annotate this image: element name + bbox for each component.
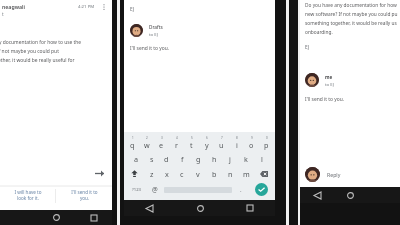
staticText: k: [244, 154, 248, 164]
button[interactable]: f: [174, 151, 190, 166]
button[interactable]: Reply: [300, 161, 400, 187]
button[interactable]: Send: [255, 183, 268, 196]
staticText: g: [196, 154, 201, 164]
staticText: r: [175, 140, 178, 150]
staticText: 2: [146, 136, 148, 140]
staticText: q: [130, 140, 135, 150]
staticText: me: [325, 74, 333, 80]
staticText: I'll send it to you.: [305, 96, 345, 103]
button[interactable]: Home: [38, 210, 75, 225]
staticText: a: [134, 154, 139, 164]
staticText: Drafts: [149, 24, 163, 30]
staticText: h: [212, 154, 217, 164]
staticText: y: [205, 140, 209, 150]
staticText: z: [150, 169, 154, 179]
staticText: something together, it would be really u…: [305, 20, 397, 27]
staticText: t: [2, 11, 4, 17]
staticText: w: [144, 140, 150, 150]
staticText: neagwali: [2, 3, 25, 10]
button[interactable]: d: [159, 151, 174, 166]
button[interactable]: Backspace: [254, 166, 274, 181]
button[interactable]: Recents: [225, 200, 275, 216]
button[interactable]: Back: [124, 200, 175, 216]
staticText: to EJ: [325, 81, 335, 87]
button[interactable]: Recents: [75, 210, 112, 225]
button[interactable]: 8: [229, 134, 244, 151]
staticText: 4: [176, 136, 178, 140]
button[interactable]: 7: [214, 134, 229, 151]
button[interactable]: 2: [139, 134, 154, 151]
staticText: 6: [206, 136, 208, 140]
button[interactable]: Forward: [94, 168, 105, 179]
button[interactable]: I'll send it to you.: [56, 189, 112, 210]
staticText: I'll send it to you.: [71, 189, 98, 201]
staticText: y documentation for how to use the: [0, 39, 82, 46]
staticText: v: [196, 169, 200, 179]
button[interactable]: 3: [154, 134, 169, 151]
button[interactable]: n: [222, 166, 238, 181]
staticText: 1: [132, 136, 134, 140]
button[interactable]: c: [174, 166, 190, 181]
button[interactable]: .: [234, 181, 248, 198]
button[interactable]: 9: [244, 134, 259, 151]
button[interactable]: l: [254, 151, 270, 166]
button[interactable]: z: [144, 166, 159, 181]
staticText: I will have to look for it.: [14, 189, 42, 201]
staticText: m: [243, 169, 250, 179]
button[interactable]: v: [190, 166, 206, 181]
button[interactable]: 0: [259, 134, 274, 151]
staticText: EJ: [305, 44, 310, 51]
staticText: p: [264, 140, 269, 150]
staticText: i: [236, 140, 238, 150]
button[interactable]: s: [144, 151, 159, 166]
button[interactable]: Back: [300, 187, 334, 203]
staticText: x: [165, 169, 169, 179]
button[interactable]: More options: [100, 3, 108, 11]
button[interactable]: a: [129, 151, 144, 166]
staticText: o: [249, 140, 254, 150]
staticText: new software? If not maybe you could pu: [305, 11, 398, 18]
staticText: f: [181, 154, 184, 164]
staticText: d: [164, 154, 169, 164]
button[interactable]: 6: [199, 134, 214, 151]
staticText: If not maybe you could put: [0, 48, 59, 55]
staticText: e: [159, 140, 164, 150]
button[interactable]: 4: [169, 134, 184, 151]
button[interactable]: @: [148, 181, 162, 198]
button[interactable]: ?123: [125, 181, 148, 198]
staticText: 4:21 PM: [78, 3, 95, 9]
staticText: onboarding.: [305, 29, 333, 36]
staticText: 5: [191, 136, 193, 140]
staticText: .: [240, 186, 242, 194]
staticText: 9: [251, 136, 253, 140]
staticText: j: [229, 154, 231, 164]
button[interactable]: Shift: [125, 166, 144, 181]
button[interactable]: 1: [125, 134, 139, 151]
button[interactable]: m: [238, 166, 254, 181]
staticText: n: [228, 169, 233, 179]
staticText: EJ: [130, 6, 135, 13]
button[interactable]: Home: [175, 200, 225, 216]
staticText: s: [150, 154, 154, 164]
button[interactable]: Home: [334, 187, 367, 203]
staticText: u: [219, 140, 224, 150]
button[interactable]: x: [159, 166, 174, 181]
staticText: 3: [161, 136, 163, 140]
button[interactable]: k: [238, 151, 254, 166]
button[interactable]: g: [190, 151, 206, 166]
staticText: 8: [236, 136, 238, 140]
button[interactable]: b: [206, 166, 222, 181]
staticText: b: [212, 169, 217, 179]
staticText: ?123: [132, 187, 142, 193]
staticText: Reply: [327, 171, 341, 178]
button[interactable]: h: [206, 151, 222, 166]
button[interactable]: j: [222, 151, 238, 166]
staticText: 0: [266, 136, 268, 140]
button[interactable]: I will have to look for it.: [0, 189, 55, 210]
staticText: ether, it would be really useful for: [0, 57, 75, 64]
staticText: l: [261, 154, 263, 164]
button[interactable]: 5: [184, 134, 199, 151]
